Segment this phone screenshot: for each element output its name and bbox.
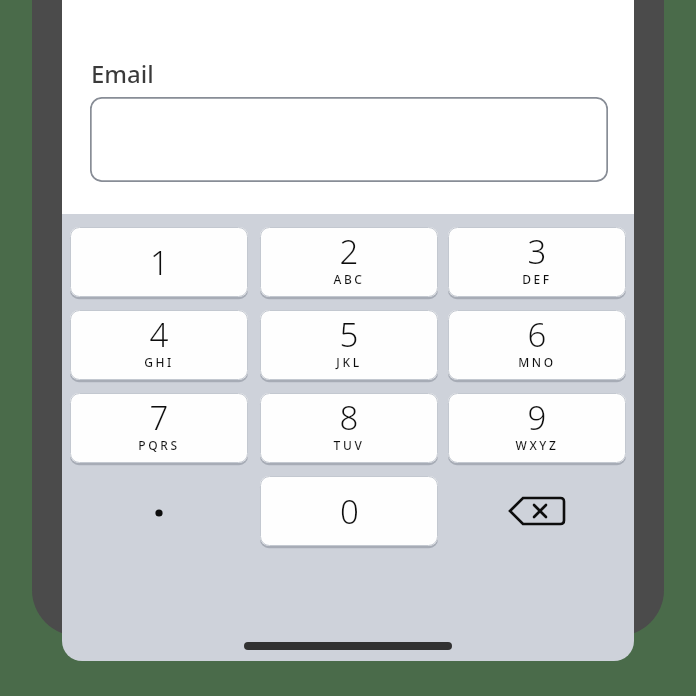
staticText: 6 — [448, 312, 626, 357]
button[interactable]: 3 — [448, 227, 626, 297]
button[interactable]: 6 — [448, 310, 626, 380]
button[interactable]: Backspace — [448, 476, 626, 546]
staticText: 1 — [150, 240, 169, 285]
button[interactable]: 4 — [70, 310, 248, 380]
button[interactable]: Email input field — [90, 97, 608, 182]
button[interactable]: 0 — [260, 476, 438, 546]
button[interactable]: 9 — [448, 393, 626, 463]
staticText: DEF — [448, 271, 626, 287]
staticText: 2 — [260, 229, 438, 274]
button[interactable]: 5 — [260, 310, 438, 380]
staticText: 5 — [260, 312, 438, 357]
staticText: JKL — [260, 354, 438, 370]
staticText: 8 — [260, 395, 438, 440]
staticText: GHI — [70, 354, 248, 370]
button[interactable]: 1 — [70, 227, 248, 297]
staticText: TUV — [260, 437, 438, 453]
staticText: PQRS — [70, 437, 248, 453]
staticText: Email — [91, 57, 154, 90]
staticText: 3 — [448, 229, 626, 274]
button[interactable]: 7 — [70, 393, 248, 463]
staticText: 0 — [340, 489, 359, 534]
button[interactable]: 2 — [260, 227, 438, 297]
staticText: 7 — [70, 395, 248, 440]
button[interactable]: 8 — [260, 393, 438, 463]
staticText: ABC — [260, 271, 438, 287]
staticText: MNO — [448, 354, 626, 370]
staticText: 9 — [448, 395, 626, 440]
staticText: 4 — [70, 312, 248, 357]
staticText: WXYZ — [448, 437, 626, 453]
button[interactable]: Period — [70, 476, 248, 546]
